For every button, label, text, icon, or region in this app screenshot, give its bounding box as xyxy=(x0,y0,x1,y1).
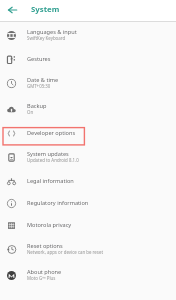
button[interactable]: Regulatory information xyxy=(0,192,176,214)
button[interactable]: Legal information xyxy=(0,170,176,192)
button[interactable]: Reset options xyxy=(0,236,176,262)
button[interactable]: Gestures xyxy=(0,48,176,70)
button[interactable]: Motorola privacy xyxy=(0,214,176,236)
staticText: GMT+05:30 xyxy=(27,83,51,89)
staticText: Regulatory information xyxy=(27,199,89,207)
staticText: Legal information xyxy=(27,177,74,185)
staticText: Backup xyxy=(27,102,47,110)
button[interactable]: About phone xyxy=(0,262,176,288)
staticText: Developer options xyxy=(27,129,76,137)
button[interactable]: Backup xyxy=(0,96,176,122)
staticText: SwiftKey Keyboard xyxy=(27,35,66,41)
staticText: Reset options xyxy=(27,242,63,250)
staticText: System updates xyxy=(27,150,69,158)
button[interactable]: Back xyxy=(0,0,24,20)
button[interactable]: Developer options xyxy=(0,122,176,144)
button[interactable]: Languages & input xyxy=(0,22,176,48)
staticText: System xyxy=(31,4,60,15)
staticText: Date & time xyxy=(27,76,59,84)
staticText: Languages & input xyxy=(27,28,77,36)
staticText: Network, apps or device can be reset xyxy=(27,249,103,255)
staticText: About phone xyxy=(27,268,62,276)
staticText: Motorola privacy xyxy=(27,221,72,229)
staticText: Updated to Android 8.1.0 xyxy=(27,157,79,163)
button[interactable]: System updates xyxy=(0,144,176,170)
staticText: Moto G™ Plus xyxy=(27,275,56,281)
staticText: On xyxy=(27,109,34,115)
staticText: Gestures xyxy=(27,55,51,63)
button[interactable]: Date & time xyxy=(0,70,176,96)
